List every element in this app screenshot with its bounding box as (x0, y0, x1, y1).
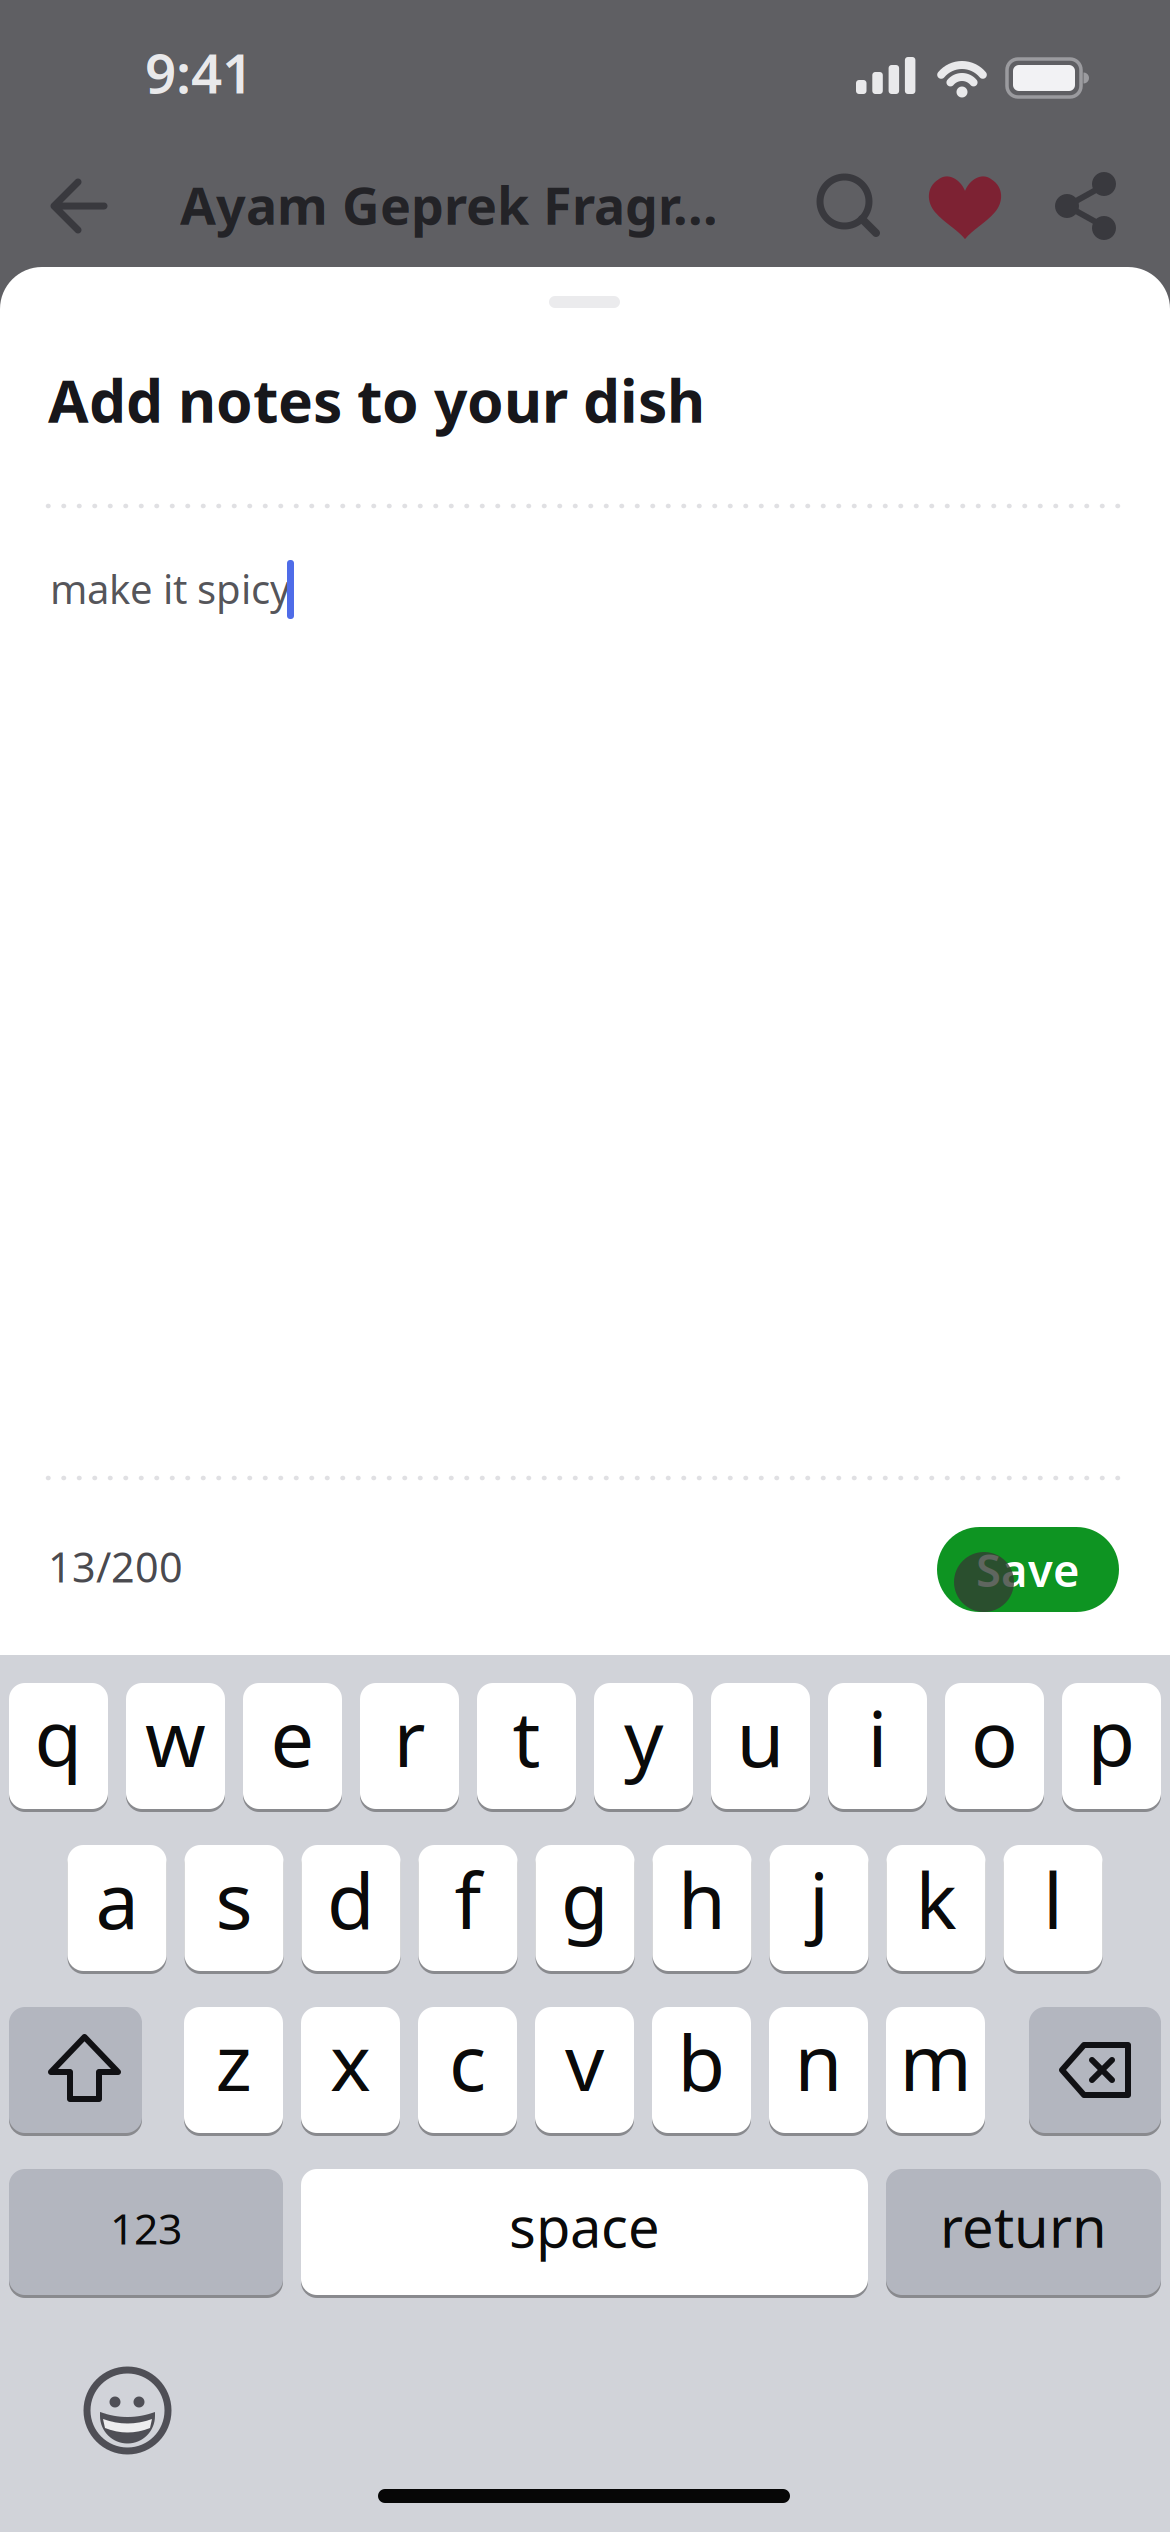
button[interactable]: e (243, 1683, 342, 1809)
staticText: k (915, 1848, 956, 1950)
button[interactable] (75, 2358, 179, 2462)
staticText: l (1043, 1848, 1063, 1950)
button[interactable]: Save (937, 1527, 1119, 1612)
staticText: h (678, 1848, 726, 1950)
staticText: 123 (110, 2200, 182, 2256)
staticText: a (95, 1848, 138, 1950)
button[interactable]: v (535, 2007, 634, 2133)
button[interactable]: x (301, 2007, 400, 2133)
staticText: e (270, 1686, 314, 1788)
staticText: t (512, 1686, 540, 1788)
button[interactable] (800, 158, 890, 248)
button[interactable]: i (828, 1683, 927, 1809)
staticText: q (34, 1686, 82, 1788)
button[interactable] (28, 156, 128, 256)
staticText: z (215, 2010, 251, 2112)
button[interactable]: m (886, 2007, 985, 2133)
staticText: 13/200 (48, 1539, 183, 1594)
button[interactable]: space (301, 2169, 868, 2295)
button[interactable]: return (886, 2169, 1161, 2295)
staticText: g (561, 1848, 609, 1950)
staticText: o (971, 1686, 1018, 1788)
staticText: c (449, 2010, 486, 2112)
button[interactable]: o (945, 1683, 1044, 1809)
staticText: n (794, 2010, 842, 2112)
staticText: make it spicy (50, 562, 290, 615)
staticText: return (940, 2189, 1107, 2263)
staticText: m (899, 2010, 971, 2112)
staticText: Save (976, 1539, 1080, 1600)
staticText: r (393, 1686, 425, 1788)
staticText: w (145, 1686, 206, 1788)
staticText: space (509, 2189, 660, 2263)
button[interactable]: r (360, 1683, 459, 1809)
staticText: f (454, 1848, 481, 1950)
button[interactable] (9, 2007, 142, 2133)
button[interactable] (1040, 160, 1132, 252)
button[interactable]: b (652, 2007, 751, 2133)
staticText: Add notes to your dish (48, 361, 705, 439)
staticText: 9:41 (145, 36, 253, 109)
staticText: p (1087, 1686, 1135, 1788)
button[interactable]: n (769, 2007, 868, 2133)
button[interactable]: c (418, 2007, 517, 2133)
button[interactable]: d (301, 1845, 400, 1971)
button[interactable]: p (1062, 1683, 1161, 1809)
button[interactable]: l (1003, 1845, 1102, 1971)
button[interactable]: j (769, 1845, 868, 1971)
staticText: d (327, 1848, 375, 1950)
staticText: u (736, 1686, 784, 1788)
button[interactable]: z (184, 2007, 283, 2133)
button[interactable]: f (418, 1845, 517, 1971)
staticText: v (565, 2010, 604, 2112)
staticText: j (809, 1848, 829, 1950)
button[interactable]: h (652, 1845, 751, 1971)
button[interactable]: 123 (9, 2169, 283, 2295)
button[interactable]: a (67, 1845, 166, 1971)
staticText: y (624, 1686, 663, 1788)
button[interactable] (1029, 2007, 1161, 2133)
button[interactable]: k (886, 1845, 985, 1971)
staticText: s (215, 1848, 252, 1950)
button[interactable]: t (477, 1683, 576, 1809)
button[interactable]: u (711, 1683, 810, 1809)
staticText: i (867, 1686, 887, 1788)
button[interactable] (917, 158, 1013, 254)
staticText: Ayam Geprek Fragr... (180, 170, 718, 239)
staticText: b (677, 2010, 725, 2112)
button[interactable]: s (184, 1845, 283, 1971)
button[interactable]: q (9, 1683, 108, 1809)
button[interactable]: g (535, 1845, 634, 1971)
button[interactable]: w (126, 1683, 225, 1809)
staticText: x (330, 2010, 371, 2112)
button[interactable]: y (594, 1683, 693, 1809)
